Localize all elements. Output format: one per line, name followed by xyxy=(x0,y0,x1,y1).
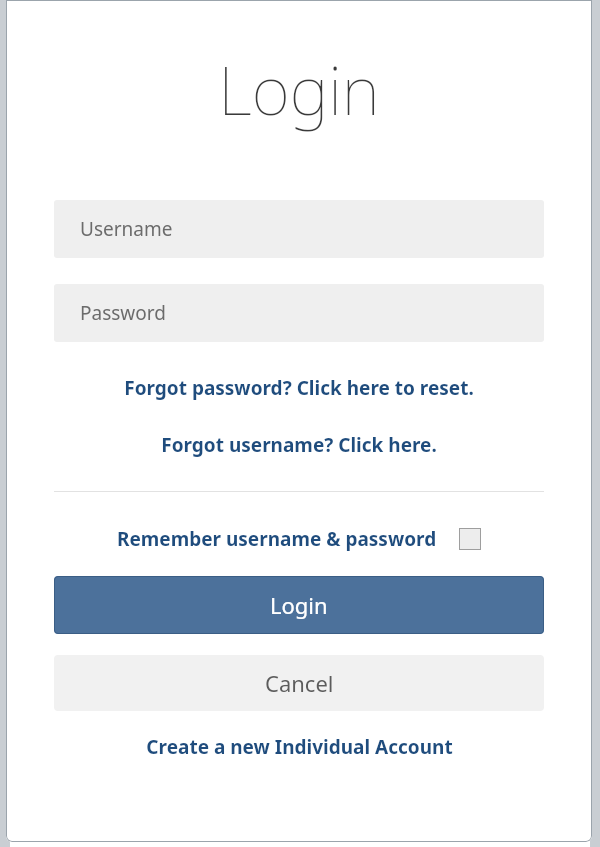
staticText: Create a new Individual Account xyxy=(146,734,453,760)
button[interactable]: Remember username & password xyxy=(54,523,544,555)
button[interactable]: Login xyxy=(54,576,544,634)
staticText: Password xyxy=(80,300,166,326)
button[interactable]: Create a new Individual Account xyxy=(54,732,544,762)
button[interactable]: Forgot username? Click here. xyxy=(54,430,544,460)
staticText: Forgot username? Click here. xyxy=(161,432,437,458)
staticText: Cancel xyxy=(265,668,334,698)
button[interactable]: Username xyxy=(54,200,544,258)
staticText: Username xyxy=(80,216,173,242)
button[interactable]: Cancel xyxy=(54,655,544,711)
button[interactable]: Forgot password? Click here to reset. xyxy=(54,373,544,403)
staticText: Login xyxy=(218,44,380,134)
staticText: Forgot password? Click here to reset. xyxy=(124,375,474,401)
staticText: Login xyxy=(270,590,328,620)
staticText: Remember username & password xyxy=(117,526,437,552)
button[interactable]: Password xyxy=(54,284,544,342)
